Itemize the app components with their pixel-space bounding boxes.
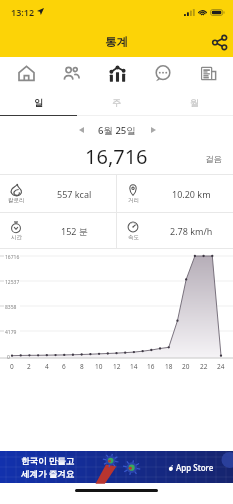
staticText: 칼로리 [8,197,25,204]
button[interactable]: 주 [77,89,155,115]
button[interactable]: Next day [143,120,163,140]
button[interactable]: 칼로리 [0,175,116,212]
staticText: 8358 [5,304,17,311]
staticText: 16 [147,362,155,371]
staticText: 0 [7,354,10,361]
staticText: 13:12 [11,6,35,18]
staticText: 0 [10,362,14,371]
staticText: 20 [182,362,190,371]
button[interactable]: News [188,57,228,89]
staticText: 14 [130,362,138,371]
staticText: 16,716 [85,143,148,170]
staticText: 시간 [11,234,22,241]
staticText: 속도 [128,234,139,241]
button[interactable]: Friends [51,57,91,89]
button[interactable]: Share [207,30,231,54]
staticText: 걸음 [205,154,222,165]
staticText: 22 [200,362,208,371]
staticText: 8 [80,362,84,371]
staticText: 10 [95,362,103,371]
staticText: 2 [27,362,31,371]
staticText: 일 [34,97,43,108]
staticText: 한국이 만들고 [21,455,75,467]
button[interactable]: 속도 [117,213,233,248]
staticText: 주 [112,97,121,108]
staticText: 557 kcal [57,188,92,200]
button[interactable]: Chat [142,57,182,89]
staticText: 세계가 즐겨요 [21,468,75,480]
button[interactable]: Previous day [71,120,91,140]
button[interactable]: Statistics [97,57,137,89]
staticText: 6월 25일 [98,124,136,137]
staticText: 거리 [128,197,139,204]
staticText: 10.20 km [172,188,211,200]
staticText: 2.78 km/h [170,225,213,237]
staticText: 4179 [5,329,17,336]
staticText: 월 [190,97,199,108]
staticText: 4 [45,362,49,371]
staticText: 18 [165,362,173,371]
staticText: 6 [62,362,66,371]
button[interactable]: 시간 [0,213,116,248]
button[interactable]: 거리 [117,175,233,212]
staticText: 24 [217,362,225,371]
staticText: 12537 [5,279,20,286]
button[interactable]: 일 [0,89,77,115]
button[interactable]: Home [6,57,46,89]
staticText: App Store [176,462,214,473]
staticText: 12 [113,362,121,371]
staticText: 통계 [105,35,128,49]
button[interactable]: 한국이 만들고 [0,451,233,483]
staticText: 152 분 [61,225,88,237]
staticText: 16716 [5,254,20,261]
button[interactable]: 월 [155,89,233,115]
